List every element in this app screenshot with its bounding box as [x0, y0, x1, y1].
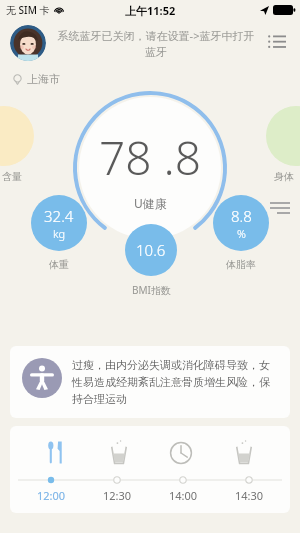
staticText: 无 SIM 卡 [6, 3, 50, 17]
staticText: 系统蓝牙已关闭，请在设置->蓝牙中打开蓝牙 [56, 28, 256, 59]
button[interactable]: 10.6 [125, 224, 177, 276]
staticText: 14:30 [235, 488, 264, 503]
button[interactable]: 列表 [264, 30, 290, 56]
staticText: 上午11:52 [125, 3, 176, 18]
staticText: 身体 [274, 170, 294, 183]
staticText: 过瘦，由内分泌失调或消化障碍导致，女性易造成经期紊乱注意骨质增生风险，保持合理运… [72, 358, 278, 406]
button[interactable] [10, 25, 46, 61]
button[interactable]: 78 .8 [70, 88, 230, 248]
button[interactable]: 过瘦，由内分泌失调或消化障碍导致，女性易造成经期紊乱注意骨质增生风险，保持合理运… [10, 346, 290, 418]
staticText: 8.8 [231, 206, 252, 226]
staticText: 10.6 [136, 240, 166, 260]
button[interactable]: 上海市 [12, 72, 300, 86]
staticText: 32.4 [44, 206, 74, 226]
button[interactable]: 8.8 [213, 195, 269, 251]
button[interactable]: 时间 [164, 436, 198, 470]
staticText: 12:30 [103, 488, 132, 503]
staticText: 含量 [2, 170, 22, 183]
button[interactable]: 饮水 [227, 436, 261, 470]
staticText: 上海市 [27, 72, 60, 86]
staticText: 14:00 [169, 488, 198, 503]
staticText: BMI指数 [132, 283, 171, 297]
button[interactable]: 32.4 [31, 195, 87, 251]
staticText: 体重 [49, 258, 69, 271]
button[interactable]: 菜单 [266, 194, 294, 222]
button[interactable]: 用餐 [39, 436, 73, 470]
staticText: U健康 [134, 195, 167, 211]
button[interactable]: 饮水 [102, 436, 136, 470]
staticText: 12:00 [37, 488, 66, 503]
staticText: 78 .8 [99, 126, 201, 189]
staticText: kg [53, 226, 66, 241]
staticText: 体脂率 [226, 258, 256, 271]
staticText: % [237, 226, 246, 241]
